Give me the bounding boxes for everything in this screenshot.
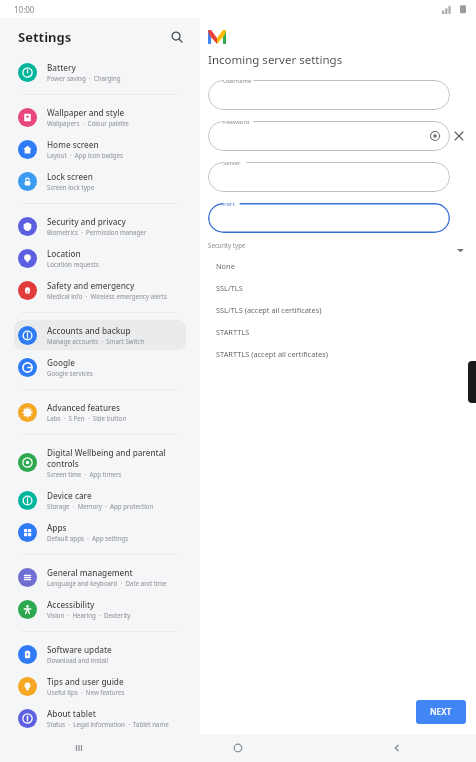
button[interactable]: Security and privacy <box>14 211 186 241</box>
button[interactable]: Search <box>164 24 190 50</box>
staticText: Security and privacy <box>47 216 126 227</box>
button[interactable]: Home <box>158 734 317 762</box>
staticText: Storage · Memory · App protection <box>47 502 154 510</box>
button[interactable]: Wallpaper and style <box>14 102 186 132</box>
staticText: Power saving · Charging <box>47 74 121 82</box>
button[interactable]: SSL/TLS <box>208 277 447 299</box>
staticText: Google <box>47 357 75 368</box>
staticText: Download and install <box>47 656 109 664</box>
button[interactable]: Back <box>317 734 476 762</box>
staticText: Tips and user guide <box>47 676 124 687</box>
staticText: Settings <box>18 28 72 46</box>
staticText: Apps <box>47 522 67 533</box>
button[interactable]: Username <box>208 80 450 110</box>
button[interactable]: Home screen <box>14 134 186 164</box>
button[interactable]: Accounts and backup <box>14 320 186 350</box>
staticText: SSL/TLS <box>216 283 243 293</box>
staticText: Username <box>223 80 252 85</box>
button[interactable]: Location <box>14 243 186 273</box>
staticText: Security type <box>208 241 246 249</box>
button[interactable]: Clear <box>450 127 468 145</box>
staticText: Wallpaper and style <box>47 107 125 118</box>
button[interactable]: Tips and user guide <box>14 671 186 701</box>
staticText: Medical info · Wireless emergency alerts <box>47 292 167 300</box>
staticText: Manage accounts · Smart Switch <box>47 337 145 345</box>
staticText: STARTTLS <box>216 327 250 337</box>
staticText: Vision · Hearing · Dexterity <box>47 611 131 619</box>
staticText: Layout · App icon badges <box>47 151 124 159</box>
button[interactable]: Lock screen <box>14 166 186 196</box>
staticText: Accessibility <box>47 599 95 610</box>
button[interactable]: General management <box>14 562 186 592</box>
button[interactable]: Port <box>208 203 450 233</box>
staticText: Device care <box>47 490 92 501</box>
staticText: Screen time · App timers <box>47 470 122 478</box>
staticText: Digital Wellbeing and parental controls <box>47 447 182 469</box>
staticText: Location requests <box>47 260 99 268</box>
button[interactable]: Recents <box>0 734 158 762</box>
staticText: General management <box>47 567 133 578</box>
button[interactable]: SSL/TLS (accept all certificates) <box>208 299 447 321</box>
button[interactable]: Digital Wellbeing and parental controls <box>14 442 186 483</box>
button[interactable]: Device care <box>14 485 186 515</box>
button[interactable]: Server <box>208 162 450 192</box>
button[interactable]: Google <box>14 352 186 382</box>
button[interactable]: STARTTLS (accept all certificates) <box>208 343 447 365</box>
button[interactable]: None <box>208 255 447 277</box>
button[interactable]: Accessibility <box>14 594 186 624</box>
staticText: Location <box>47 248 81 259</box>
staticText: Google services <box>47 369 93 377</box>
staticText: Safety and emergency <box>47 280 135 291</box>
staticText: Incoming server settings <box>208 52 343 68</box>
button[interactable]: NEXT <box>416 700 466 724</box>
button[interactable]: Software update <box>14 639 186 669</box>
button[interactable]: Apps <box>14 517 186 547</box>
staticText: Advanced features <box>47 402 121 413</box>
staticText: Wallpapers · Colour palette <box>47 119 129 127</box>
staticText: About tablet <box>47 708 96 719</box>
staticText: Home screen <box>47 139 99 150</box>
staticText: Useful tips · New features <box>47 688 125 696</box>
staticText: Lock screen <box>47 171 93 182</box>
button[interactable]: Safety and emergency <box>14 275 186 305</box>
staticText: Status · Legal information · Tablet name <box>47 720 169 728</box>
staticText: None <box>216 261 235 271</box>
button[interactable]: STARTTLS <box>208 321 447 343</box>
staticText: Server <box>223 162 241 167</box>
button[interactable]: Advanced features <box>14 397 186 427</box>
staticText: 10:00 <box>14 4 35 15</box>
staticText: Biometrics · Permission manager <box>47 228 147 236</box>
staticText: Port <box>223 203 235 208</box>
staticText: Password <box>223 121 250 126</box>
staticText: Software update <box>47 644 112 655</box>
staticText: Screen lock type <box>47 183 95 191</box>
staticText: SSL/TLS (accept all certificates) <box>216 305 322 315</box>
staticText: NEXT <box>430 706 452 718</box>
staticText: STARTTLS (accept all certificates) <box>216 349 328 359</box>
staticText: Battery <box>47 62 76 73</box>
staticText: Accounts and backup <box>47 325 131 336</box>
staticText: Language and keyboard · Date and time <box>47 579 167 587</box>
staticText: Default apps · App settings <box>47 534 129 542</box>
staticText: Labs · S Pen · Side button <box>47 414 127 422</box>
button[interactable]: About tablet <box>14 703 186 733</box>
button[interactable]: Battery <box>14 57 186 87</box>
button[interactable]: Password <box>208 121 450 151</box>
